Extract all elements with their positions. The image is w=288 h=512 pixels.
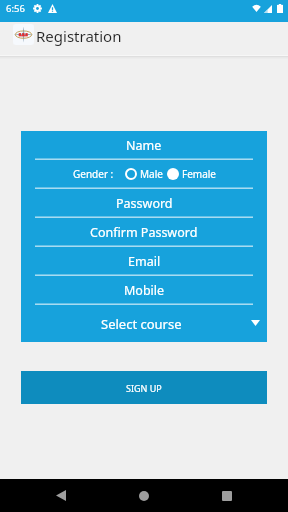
staticText: 6:56: [6, 2, 25, 15]
staticText: SIGN UP: [126, 382, 162, 394]
staticText: Select course: [101, 315, 182, 333]
staticText: Confirm Password: [90, 224, 198, 241]
staticText: Email: [128, 253, 161, 270]
button[interactable]: SIGN UP: [21, 371, 267, 404]
staticText: Registration: [36, 26, 122, 46]
button[interactable]: Select course: [21, 305, 267, 342]
button[interactable]: Home: [124, 479, 164, 512]
staticText: Mobile: [124, 282, 165, 299]
staticText: Name: [126, 137, 162, 154]
staticText: Female: [182, 167, 217, 181]
button[interactable]: Name: [21, 131, 267, 160]
button[interactable]: Password: [21, 189, 267, 218]
button[interactable]: Email: [21, 247, 267, 276]
other: Settings: [33, 4, 42, 13]
button[interactable]: Mobile: [21, 276, 267, 305]
button[interactable]: Confirm Password: [21, 218, 267, 247]
staticText: Male: [140, 167, 163, 181]
staticText: Password: [116, 195, 173, 212]
button[interactable]: Female: [167, 167, 217, 181]
button[interactable]: Recent apps: [207, 479, 247, 512]
button[interactable]: Male: [125, 167, 163, 181]
button[interactable]: Back: [41, 479, 81, 512]
staticText: Gender :: [73, 167, 114, 181]
